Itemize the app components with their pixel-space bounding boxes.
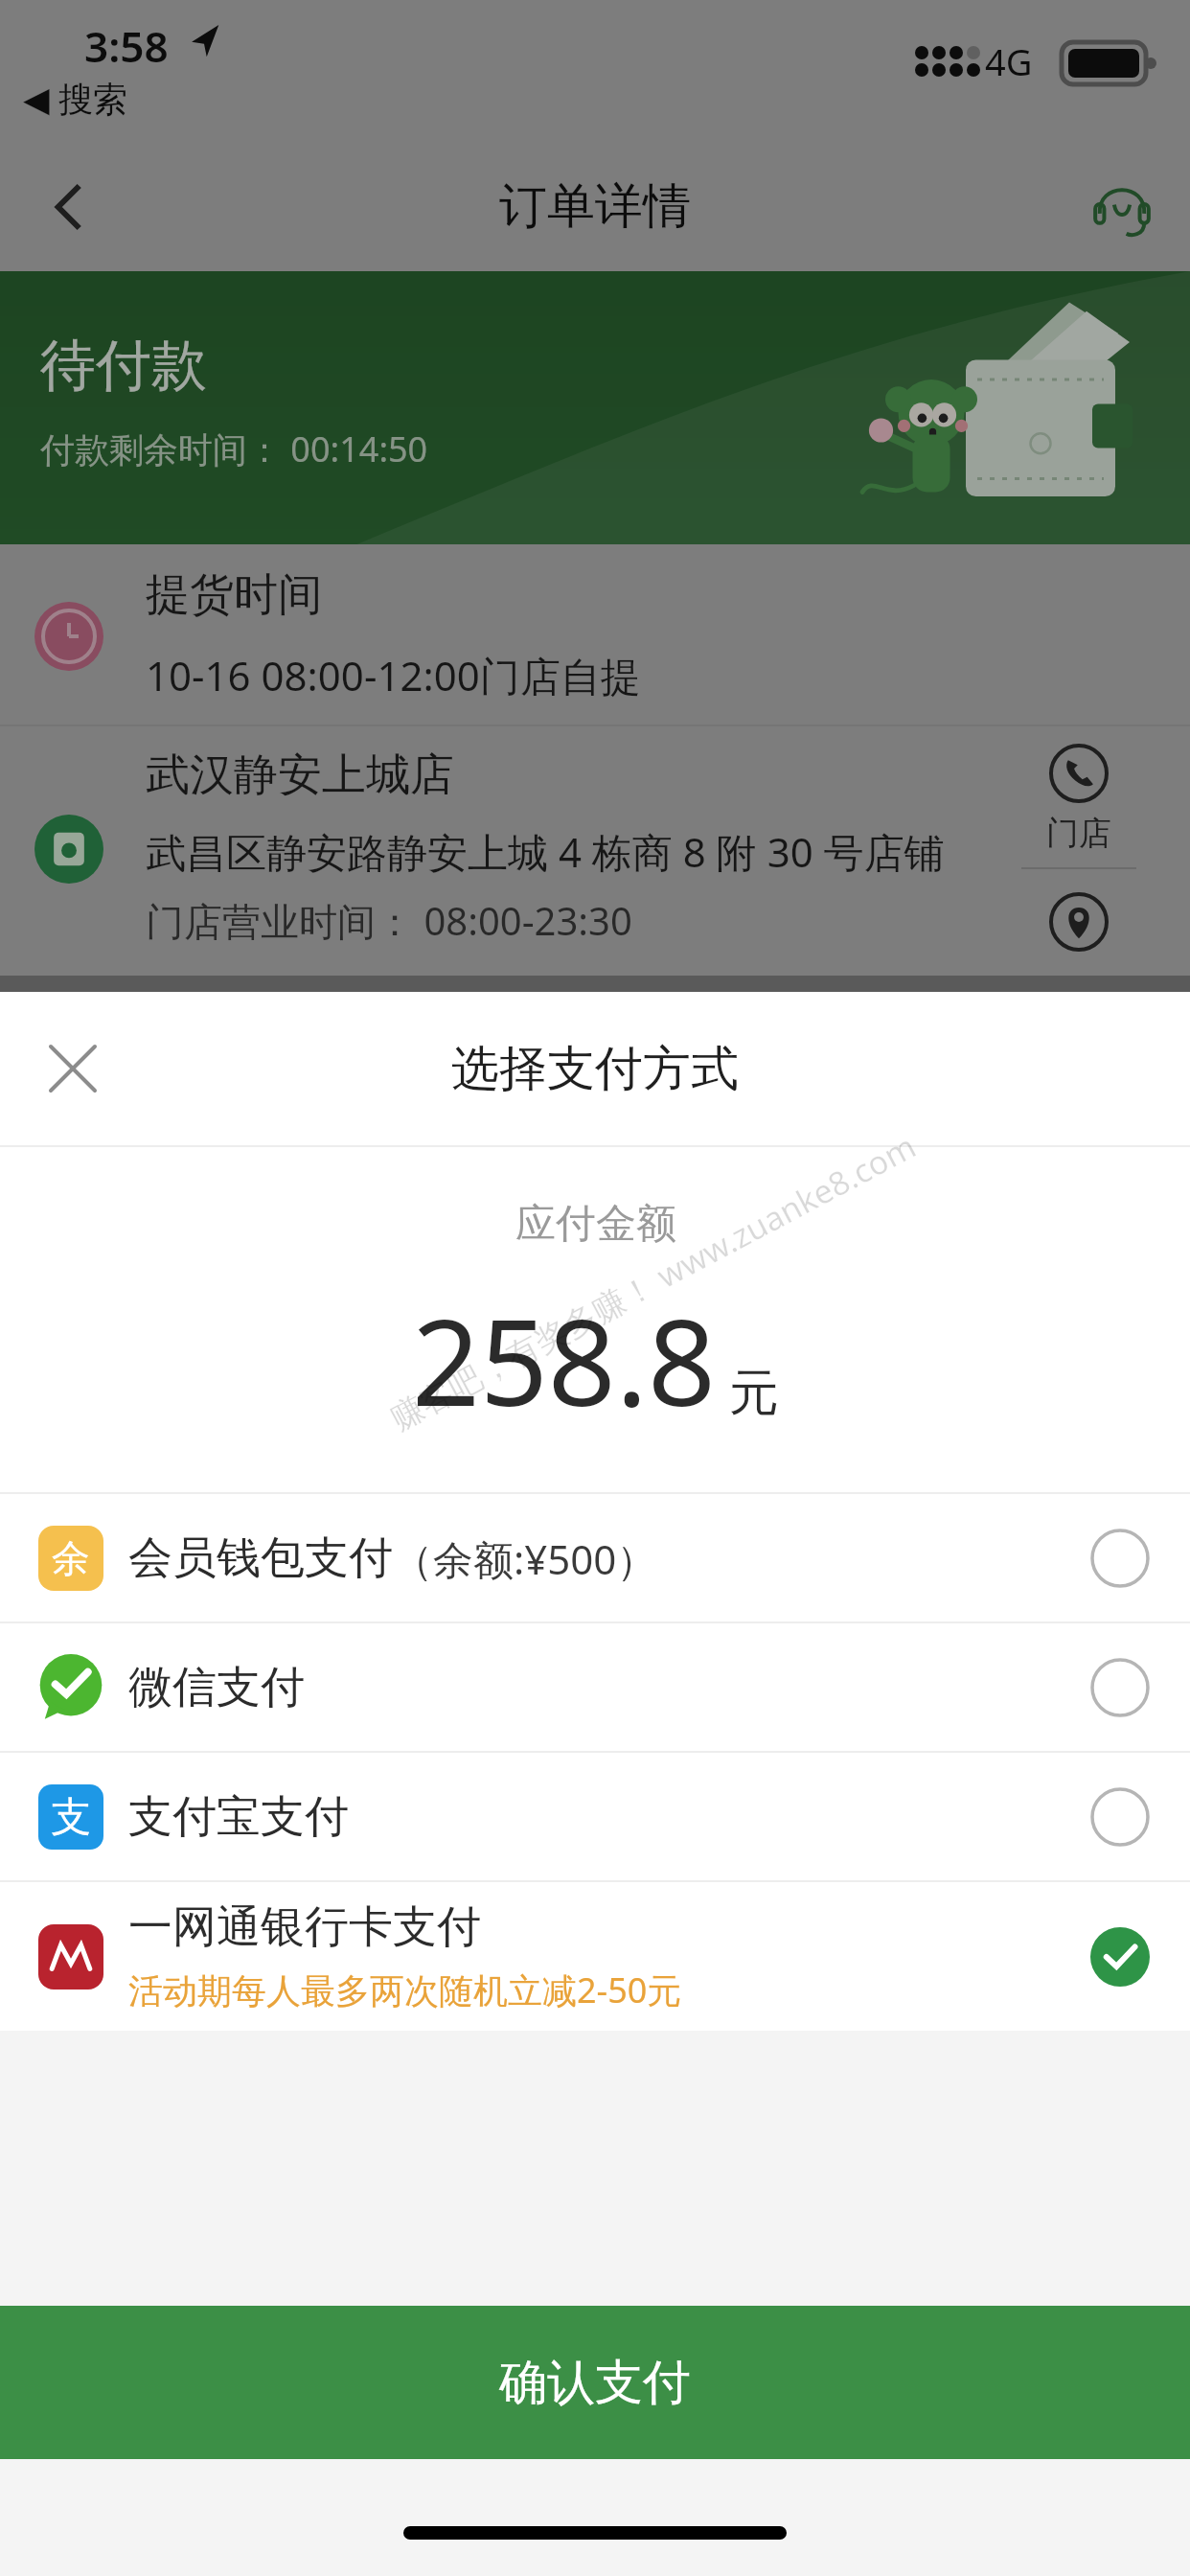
staticText: 258.8 bbox=[412, 1278, 716, 1440]
button[interactable]: 一网通银行卡支付 bbox=[0, 1882, 1190, 2031]
staticText: 付款剩余时间： 00:14:50 bbox=[40, 425, 428, 472]
staticText: 确认支付 bbox=[499, 2353, 691, 2413]
staticText: 会员钱包支付 bbox=[128, 1530, 393, 1586]
button[interactable]: 余 bbox=[0, 1494, 1190, 1621]
staticText: 武昌区静安路静安上城 4 栋商 8 附 30 号店铺 bbox=[146, 824, 945, 879]
button[interactable]: Map location bbox=[1043, 886, 1114, 957]
staticText: 订单详情 bbox=[499, 176, 691, 237]
staticText: 赚客吧，有奖多赚！ www.zuanke8.com bbox=[382, 1123, 923, 1439]
button[interactable]: 微信支付 bbox=[0, 1623, 1190, 1751]
staticText: 门店营业时间： 08:00-23:30 bbox=[146, 894, 632, 947]
staticText: 3:58 bbox=[84, 17, 169, 75]
staticText: 支付宝支付 bbox=[128, 1789, 349, 1845]
button[interactable]: Call store bbox=[1041, 738, 1117, 860]
staticText: 微信支付 bbox=[128, 1660, 305, 1715]
staticText: 武汉静安上城店 bbox=[146, 747, 454, 803]
staticText: 活动期每人最多两次随机立减2-50元 bbox=[128, 1966, 682, 2013]
button[interactable]: Customer service bbox=[1079, 164, 1165, 250]
staticText: 门店 bbox=[1046, 813, 1111, 854]
staticText: 一网通银行卡支付 bbox=[128, 1899, 481, 1955]
staticText: 余 bbox=[52, 1534, 90, 1582]
button[interactable]: 支 bbox=[0, 1753, 1190, 1880]
staticText: （余额:¥500） bbox=[393, 1531, 657, 1586]
staticText: 提货时间 bbox=[146, 567, 322, 623]
button[interactable]: Back bbox=[27, 164, 113, 250]
staticText: 待付款 bbox=[40, 331, 207, 401]
staticText: 4G bbox=[985, 36, 1033, 86]
staticText: 10-16 08:00-12:00门店自提 bbox=[146, 648, 641, 702]
button[interactable]: 确认支付 bbox=[0, 2306, 1190, 2459]
staticText: 元 bbox=[729, 1362, 779, 1425]
staticText: ◀ 搜索 bbox=[23, 75, 128, 122]
staticText: 支 bbox=[51, 1792, 91, 1843]
button[interactable]: Close bbox=[29, 1024, 117, 1113]
staticText: 应付金额 bbox=[515, 1199, 676, 1250]
staticText: 选择支付方式 bbox=[451, 1039, 739, 1099]
